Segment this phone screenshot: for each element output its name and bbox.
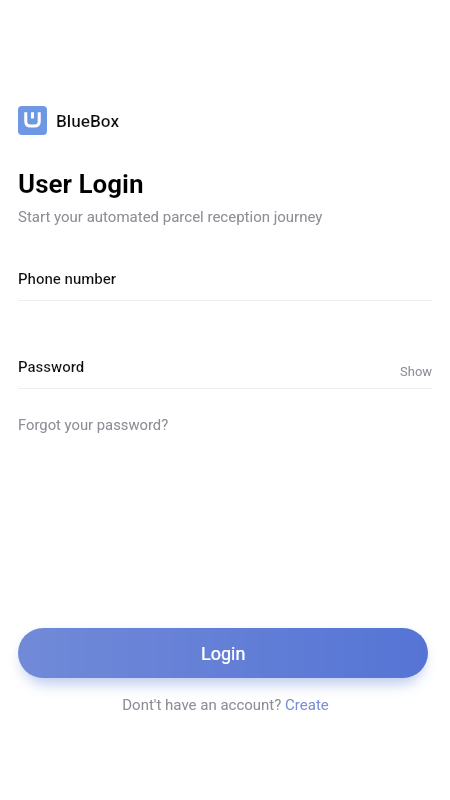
button[interactable]: Login [18,628,428,678]
staticText: BlueBox [56,111,120,131]
button[interactable]: Password [18,354,388,389]
button[interactable]: Show [396,358,437,385]
staticText: Login [201,643,246,664]
staticText: Phone number [18,270,117,288]
staticText: Forgot your password? [18,416,169,433]
staticText: Dont't have an account? Create [122,696,329,714]
button[interactable]: Forgot your password? [18,416,169,433]
staticText: Start your automated parcel reception jo… [18,208,323,226]
staticText: Password [18,358,85,376]
button[interactable]: Dont't have an account? Create [122,696,329,714]
staticText: User Login [18,169,144,199]
other: BlueBox logo [18,106,47,135]
button[interactable]: Phone number [18,266,432,301]
staticText: Show [400,364,433,379]
